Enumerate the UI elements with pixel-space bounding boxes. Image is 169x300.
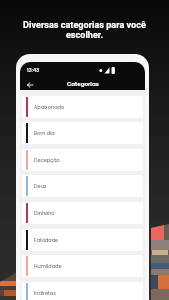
staticText: Deus bbox=[34, 183, 47, 190]
staticText: Indiretas bbox=[34, 290, 56, 297]
button[interactable]: Falsidade bbox=[22, 229, 143, 251]
button[interactable]: Deus bbox=[22, 175, 143, 197]
button[interactable]: Voltar bbox=[24, 79, 35, 90]
button[interactable]: Indiretas bbox=[22, 282, 143, 300]
button[interactable]: Bom dia bbox=[22, 122, 143, 144]
staticText: Decepção bbox=[34, 157, 60, 164]
button[interactable]: Decepção bbox=[22, 149, 143, 171]
staticText: Apaixonado bbox=[34, 104, 65, 111]
staticText: Categorias bbox=[67, 80, 99, 88]
staticText: Diversas categorias para você escolher. bbox=[0, 20, 169, 40]
button[interactable]: Dinheiro bbox=[22, 202, 143, 224]
staticText: Humildade bbox=[34, 263, 62, 270]
staticText: Bom dia bbox=[34, 130, 55, 137]
staticText: 13:43 bbox=[27, 67, 40, 74]
staticText: Dinheiro bbox=[34, 210, 55, 217]
staticText: Falsidade bbox=[34, 237, 59, 244]
button[interactable]: Humildade bbox=[22, 255, 143, 277]
button[interactable]: Apaixonado bbox=[22, 96, 143, 118]
